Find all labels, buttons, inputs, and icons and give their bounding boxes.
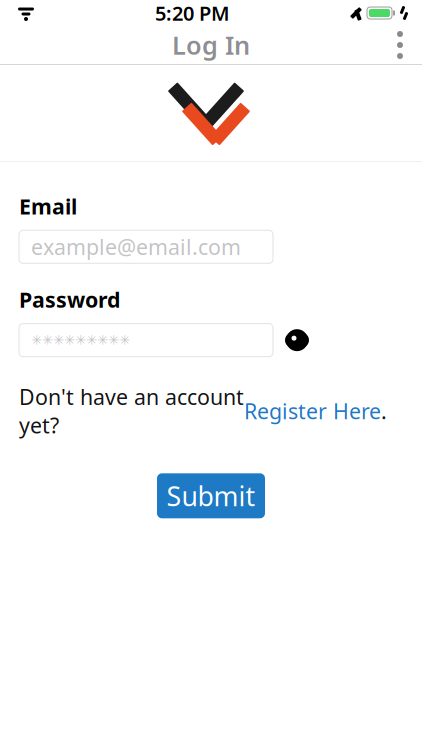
staticText: Don't have an account yet?	[19, 383, 244, 439]
button[interactable]: More options	[378, 23, 422, 67]
staticText: Email	[19, 192, 77, 220]
button[interactable]: Show password	[273, 324, 321, 357]
staticText: 5:20 PM	[155, 0, 230, 26]
staticText: Submit	[166, 478, 255, 513]
staticText: .	[381, 397, 387, 425]
button[interactable]: example@email.com	[19, 230, 273, 263]
staticText: ✳✳✳✳✳✳✳✳✳	[31, 333, 130, 348]
button[interactable]: ✳✳✳✳✳✳✳✳✳	[19, 324, 273, 357]
staticText: example@email.com	[31, 233, 241, 261]
staticText: Register Here	[244, 397, 381, 425]
staticText: Log In	[172, 28, 250, 62]
staticText: Password	[19, 285, 120, 314]
button[interactable]: Submit	[157, 473, 265, 518]
button[interactable]: Don't have an account yet?	[19, 383, 403, 439]
